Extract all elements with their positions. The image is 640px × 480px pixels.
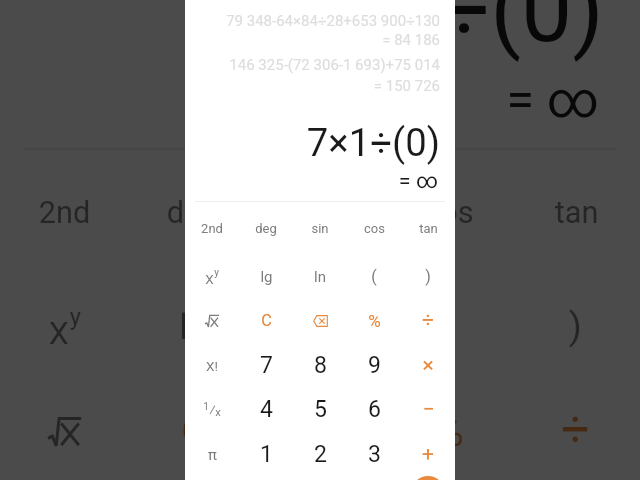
button[interactable]: % [384, 377, 512, 480]
staticText: tan [554, 195, 599, 231]
staticText: 1 [203, 401, 209, 413]
button[interactable]: Backspace [293, 298, 347, 343]
staticText: y [214, 267, 219, 279]
staticText: y [69, 304, 81, 332]
button[interactable]: 1 [239, 432, 293, 477]
button[interactable]: 2nd [1, 160, 128, 266]
button[interactable]: 2nd [185, 206, 239, 251]
staticText: 8 [314, 352, 327, 379]
staticText: ) [568, 304, 582, 349]
staticText: deg [255, 221, 277, 236]
staticText: = ∞ [504, 70, 599, 129]
button[interactable]: cos [347, 206, 401, 251]
staticText: 146 325-(72 306-1 693)+75 014 [229, 56, 440, 74]
button[interactable]: tan [401, 206, 455, 251]
button[interactable]: ln [293, 254, 347, 299]
staticText: ) [425, 267, 431, 286]
staticText: 7 [260, 352, 273, 379]
staticText: cos [364, 221, 385, 236]
button[interactable]: ( [347, 254, 401, 299]
staticText: + [422, 442, 434, 467]
staticText: × [422, 353, 434, 378]
staticText: 79 348-64×84÷28+653 900÷130 [226, 12, 440, 30]
button[interactable]: X [185, 254, 239, 299]
staticText: X [48, 313, 69, 351]
staticText: ( [371, 267, 377, 286]
button[interactable]: Backspace [256, 377, 384, 480]
staticText: C [261, 311, 272, 330]
button[interactable]: X! [185, 343, 239, 388]
button[interactable]: 7 [239, 343, 293, 388]
staticText: 3 [368, 441, 381, 468]
staticText: = 150 726 [373, 77, 440, 95]
button[interactable]: ( [384, 273, 512, 379]
button[interactable]: deg [239, 206, 293, 251]
button[interactable]: lg [128, 273, 256, 379]
button[interactable]: % [347, 298, 401, 343]
button[interactable]: 8 [293, 343, 347, 388]
staticText: sin [299, 195, 341, 231]
staticText: ÷ [422, 308, 434, 333]
staticText: cos [424, 195, 474, 231]
staticText: 5 [314, 396, 327, 423]
staticText: tan [419, 221, 438, 236]
staticText: sin [311, 221, 329, 236]
button[interactable]: 9 [347, 343, 401, 388]
button[interactable]: lg [239, 254, 293, 299]
staticText: lg [260, 268, 273, 286]
button[interactable]: 3 [347, 432, 401, 477]
staticText: = 84 186 [382, 31, 440, 49]
button[interactable]: × [401, 343, 455, 388]
button[interactable]: ) [512, 273, 639, 379]
button[interactable] [1, 377, 128, 480]
button[interactable]: ÷ [512, 377, 639, 480]
button[interactable]: 1 [185, 387, 239, 432]
button[interactable]: sin [256, 160, 384, 266]
button[interactable]: C [128, 377, 256, 480]
button[interactable]: − [401, 387, 455, 432]
staticText: 2nd [201, 221, 223, 236]
staticText: = ∞ [398, 168, 438, 193]
staticText: 4 [260, 396, 273, 423]
staticText: X! [206, 358, 218, 374]
staticText: % [368, 311, 381, 331]
button[interactable]: π [185, 432, 239, 477]
button[interactable]: X [1, 273, 128, 379]
button[interactable] [185, 298, 239, 343]
staticText: deg [166, 195, 218, 231]
button[interactable]: 5 [293, 387, 347, 432]
staticText: 6 [368, 396, 381, 423]
staticText: 2nd [39, 195, 91, 231]
button[interactable]: + [401, 432, 455, 477]
staticText: x [215, 406, 221, 419]
staticText: ÷ [561, 401, 590, 460]
staticText: 9 [368, 352, 381, 379]
button[interactable]: cos [384, 160, 512, 266]
staticText: % [433, 408, 464, 455]
staticText: X [205, 271, 214, 287]
button[interactable]: 2 [293, 432, 347, 477]
button[interactable]: ln [256, 273, 384, 379]
staticText: 2 [314, 441, 327, 468]
staticText: C [180, 408, 206, 453]
button[interactable]: sin [293, 206, 347, 251]
staticText: 1 [260, 441, 273, 468]
button[interactable]: deg [128, 160, 256, 266]
button[interactable]: = [401, 476, 455, 480]
button[interactable]: 4 [239, 387, 293, 432]
staticText: ln [314, 268, 326, 286]
button[interactable]: ÷ [401, 298, 455, 343]
button[interactable]: ) [401, 254, 455, 299]
staticText: − [422, 397, 435, 422]
button[interactable]: tan [512, 160, 639, 266]
button[interactable]: C [239, 298, 293, 343]
staticText: ln [306, 306, 334, 349]
staticText: ⁄ [209, 402, 216, 418]
button[interactable]: 6 [347, 387, 401, 432]
staticText: 7×1÷(0) [306, 120, 440, 165]
